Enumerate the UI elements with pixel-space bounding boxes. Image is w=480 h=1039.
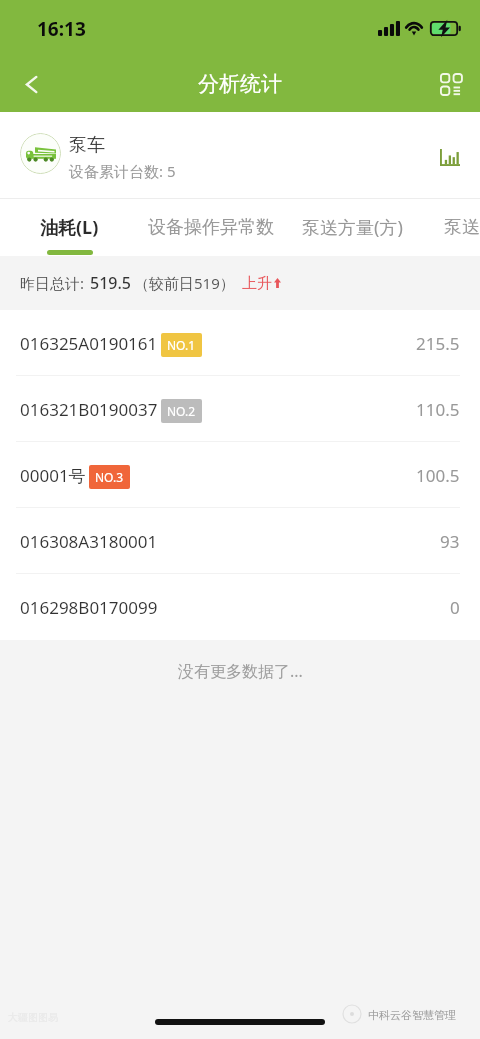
staticText: 0 <box>450 596 460 619</box>
button[interactable]: 泵送方量(方) <box>302 199 444 249</box>
staticText: NO.3 <box>95 469 124 485</box>
button[interactable]: 00001号 <box>0 442 480 508</box>
staticText: 93 <box>440 530 460 553</box>
staticText: 泵送 <box>444 216 480 239</box>
staticText: 泵车 <box>69 134 105 157</box>
button[interactable]: 016321B0190037 <box>0 376 480 442</box>
staticText: 00001号 <box>20 464 86 487</box>
staticText: 215.5 <box>416 332 460 355</box>
staticText: 泵送方量(方) <box>302 215 403 240</box>
staticText: NO.2 <box>167 403 196 419</box>
staticText: （较前日519） <box>134 273 235 293</box>
button[interactable]: 016308A3180001 <box>0 508 480 574</box>
staticText: 昨日总计: <box>20 273 85 293</box>
staticText: 设备累计台数: 5 <box>69 161 176 181</box>
button[interactable]: 设备操作异常数 <box>148 199 302 249</box>
staticText: 16:13 <box>37 16 86 42</box>
staticText: 上升 <box>242 274 272 293</box>
button[interactable]: 油耗(L) <box>40 199 148 249</box>
staticText: 没有更多数据了... <box>178 660 303 682</box>
button[interactable]: 泵送 <box>444 199 480 249</box>
staticText: 油耗(L) <box>40 215 99 240</box>
staticText: 016298B0170099 <box>20 596 158 619</box>
button[interactable]: Grid view <box>426 56 474 112</box>
staticText: NO.1 <box>167 337 196 353</box>
staticText: 519.5 <box>90 272 131 294</box>
staticText: 100.5 <box>416 464 460 487</box>
button[interactable]: Back <box>8 56 56 112</box>
staticText: 016308A3180001 <box>20 530 158 553</box>
button[interactable]: 016298B0170099 <box>0 574 480 640</box>
staticText: 016321B0190037 <box>20 398 158 421</box>
staticText: 016325A0190161 <box>20 332 158 355</box>
staticText: 110.5 <box>416 398 460 421</box>
staticText: 分析统计 <box>198 71 282 97</box>
button[interactable]: Chart <box>431 140 469 178</box>
staticText: 设备操作异常数 <box>148 216 274 239</box>
staticText: 大疆图图易 <box>8 1011 58 1024</box>
button[interactable]: 016325A0190161 <box>0 310 480 376</box>
staticText: 中科云谷智慧管理 <box>368 1008 456 1022</box>
